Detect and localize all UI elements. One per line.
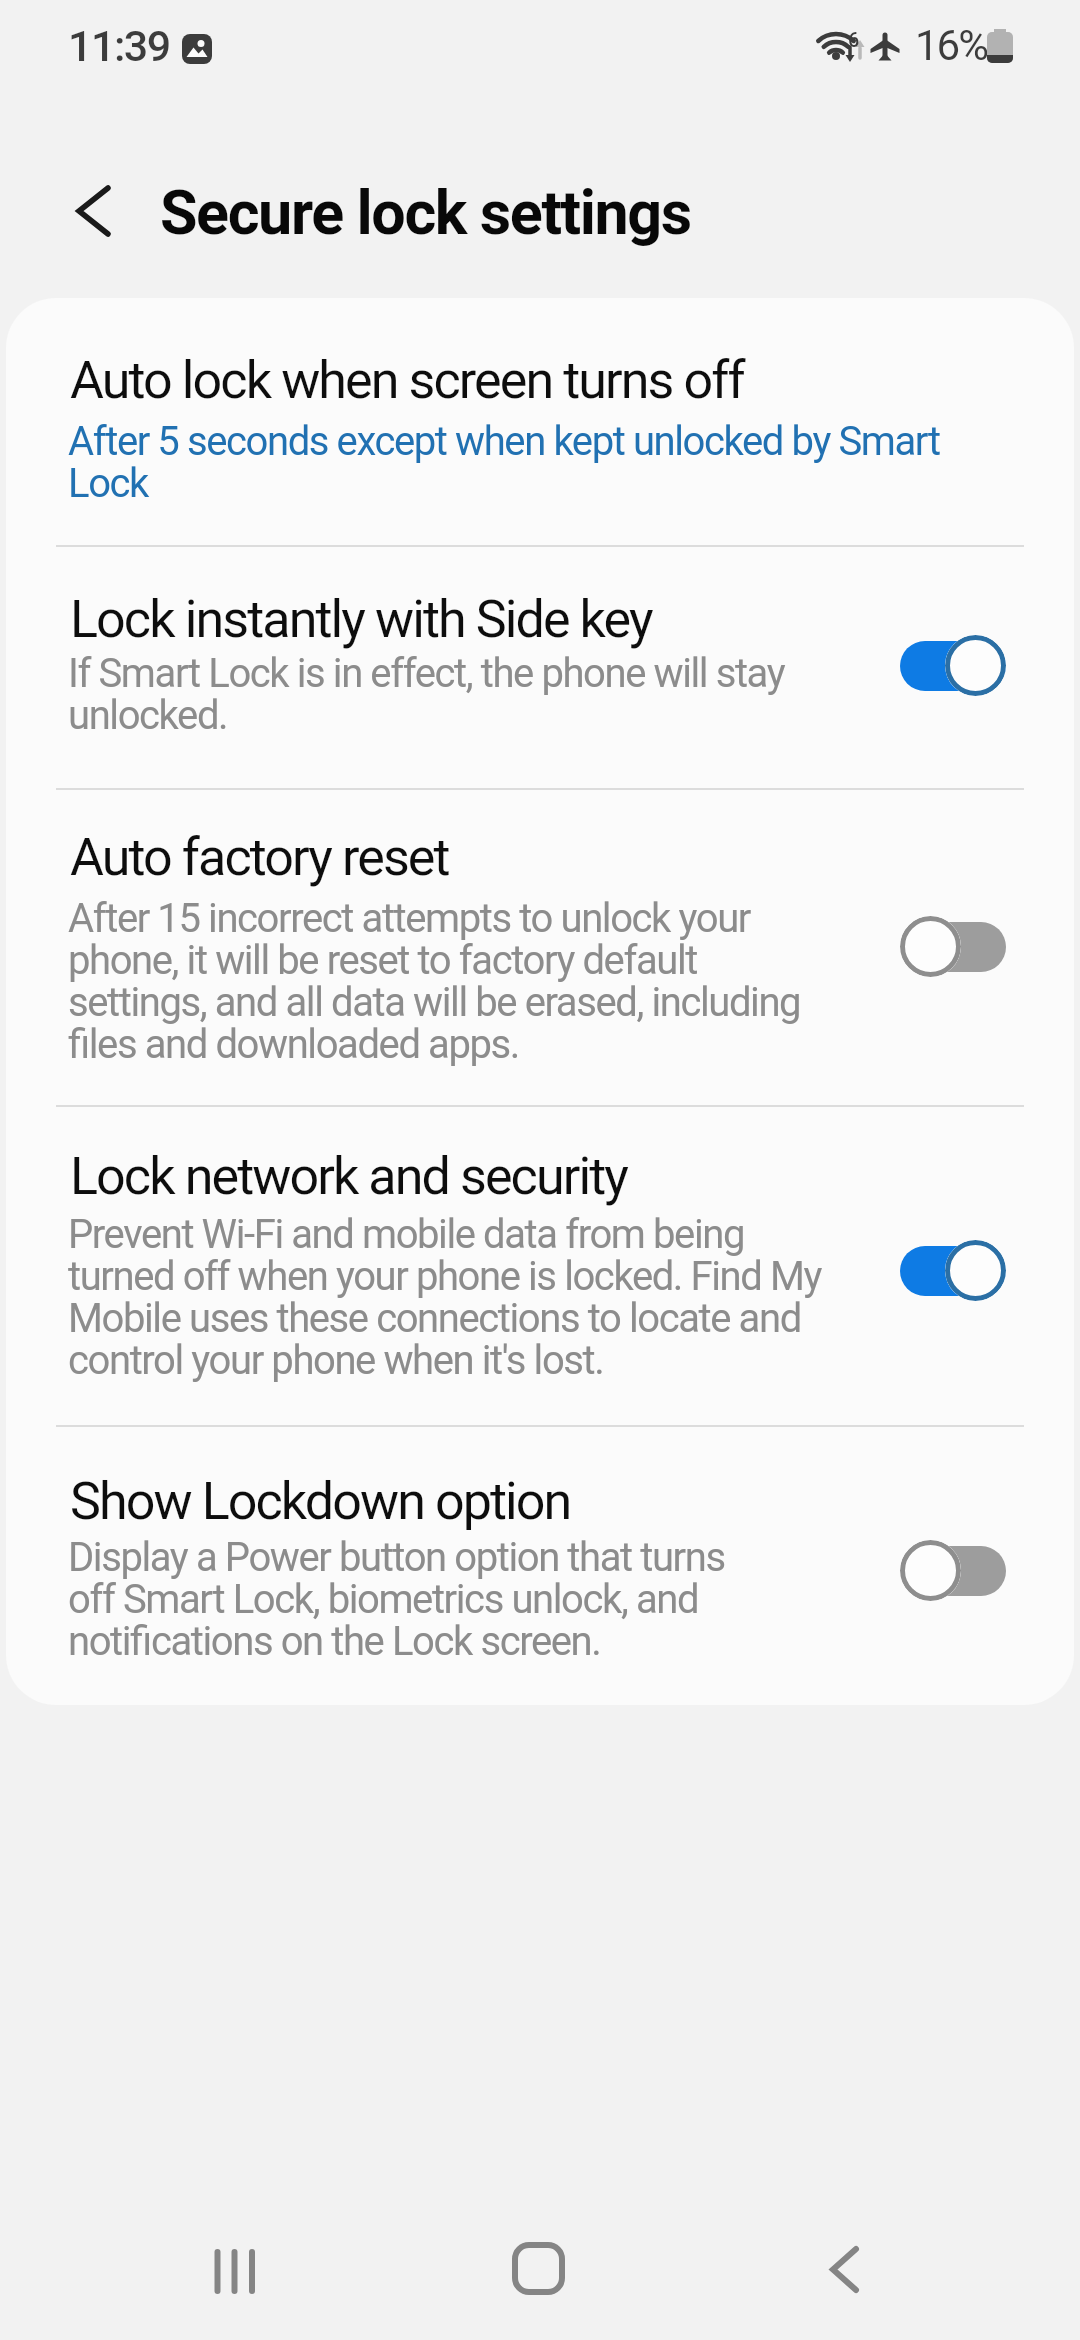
staticText: If Smart Lock is in effect, the phone wi… (68, 650, 785, 739)
button[interactable] (900, 1240, 1006, 1301)
staticText: Prevent Wi-Fi and mobile data from being… (68, 1211, 821, 1384)
staticText: Display a Power button option that turns… (68, 1534, 725, 1665)
button[interactable] (6, 546, 1074, 788)
staticText: 16% (915, 21, 987, 70)
button[interactable] (168, 2220, 268, 2320)
staticText: After 5 seconds except when kept unlocke… (68, 418, 940, 507)
button[interactable] (900, 1540, 1006, 1601)
button[interactable] (6, 1106, 1074, 1425)
button[interactable] (790, 2220, 890, 2320)
button[interactable] (900, 916, 1006, 977)
button[interactable] (900, 635, 1006, 696)
staticText: Secure lock settings (160, 177, 691, 248)
staticText: 6 (848, 28, 860, 51)
button[interactable] (488, 2220, 588, 2320)
staticText: After 15 incorrect attempts to unlock yo… (68, 895, 801, 1068)
button[interactable] (56, 178, 128, 246)
staticText: 11:39 (68, 21, 170, 71)
button[interactable] (6, 298, 1074, 545)
staticText: Lock network and security (70, 1146, 627, 1207)
staticText: Lock instantly with Side key (70, 589, 652, 650)
staticText: Show Lockdown option (70, 1471, 571, 1532)
staticText: Auto lock when screen turns off (70, 350, 744, 411)
staticText: Auto factory reset (70, 827, 449, 888)
button[interactable] (6, 789, 1074, 1105)
button[interactable] (6, 1426, 1074, 1705)
